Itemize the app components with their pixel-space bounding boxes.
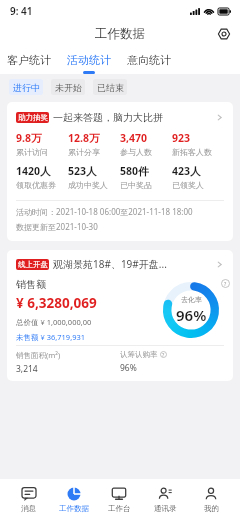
staticText: 累计分享 (68, 147, 100, 157)
button[interactable]: 已结束 (93, 79, 127, 95)
staticText: 423人 (172, 164, 201, 178)
staticText: 523人 (68, 164, 97, 178)
staticText: 消息 (21, 504, 36, 513)
staticText: 成功中奖人 (68, 180, 108, 190)
staticText: 3,214 (16, 363, 38, 375)
staticText: 9: 41 (10, 4, 33, 18)
staticText: 活动时间：2021-10-18 06:00至2021-11-18 18:00 (16, 206, 193, 217)
button[interactable]: 客户统计 (6, 46, 52, 74)
staticText: 580件 (120, 164, 149, 178)
staticText: 线上开盘 (18, 260, 48, 269)
button[interactable]: 消息 (6, 479, 51, 520)
staticText: 通讯录 (154, 504, 177, 513)
button[interactable]: 进行中 (9, 79, 43, 95)
staticText: 活动统计 (67, 53, 111, 67)
button[interactable]: 助力抽奖 (7, 102, 233, 241)
button[interactable]: 工作数据 (51, 479, 96, 520)
staticText: 3,470 (120, 131, 148, 145)
staticText: 助力抽奖 (18, 113, 48, 122)
button[interactable]: 线上开盘 (7, 250, 233, 381)
staticText: 1420人 (16, 164, 51, 178)
staticText: 进行中 (13, 82, 40, 93)
staticText: 客户统计 (7, 53, 51, 67)
staticText: 工作台 (108, 504, 131, 513)
staticText: 923 (172, 131, 191, 145)
staticText: 已中奖品 (120, 180, 152, 190)
staticText: 96% (176, 305, 207, 325)
staticText: 观湖景苑18#、19#开盘... (53, 257, 215, 271)
staticText: 已领奖人 (172, 180, 204, 190)
staticText: 工作数据 (59, 504, 89, 513)
staticText: 未开始 (55, 82, 82, 93)
button[interactable]: Settings (214, 24, 234, 44)
staticText: 已结束 (97, 82, 124, 93)
staticText: 工作数据 (95, 26, 145, 42)
staticText: 数据更新至2021-10-30 (16, 221, 98, 232)
staticText: 96% (120, 362, 137, 374)
staticText: 一起来答题，脑力大比拼 (53, 111, 215, 124)
button[interactable]: 工作台 (96, 479, 142, 520)
staticText: ? (224, 280, 227, 287)
staticText: 12.8万 (68, 131, 100, 145)
button[interactable]: Help (219, 277, 231, 289)
staticText: 我的 (204, 504, 219, 513)
staticText: 意向统计 (127, 53, 171, 67)
staticText: ¥ 6,3280,069 (16, 294, 97, 312)
button[interactable]: 未开始 (51, 79, 85, 95)
staticText: 销售额 (16, 278, 46, 291)
staticText: 去化率 (181, 295, 202, 304)
staticText: 销售面积(m²) (16, 350, 61, 360)
staticText: 参与人数 (120, 147, 152, 157)
staticText: 总价值 ¥ 1,000,000,00 (16, 317, 92, 327)
button[interactable]: 意向统计 (126, 46, 172, 74)
button[interactable]: 我的 (188, 479, 234, 520)
button[interactable]: 通讯录 (142, 479, 188, 520)
staticText: 9.8万 (16, 131, 42, 145)
staticText: 领取优惠券 (16, 180, 56, 190)
staticText: 新拓客人数 (172, 147, 212, 157)
staticText: 累计访问 (16, 147, 48, 157)
staticText: ? (162, 351, 165, 358)
staticText: 未售额 ¥ 36,719,931 (16, 332, 86, 342)
button[interactable]: 活动统计 (66, 46, 112, 74)
staticText: 认筹认购率 (120, 350, 158, 359)
